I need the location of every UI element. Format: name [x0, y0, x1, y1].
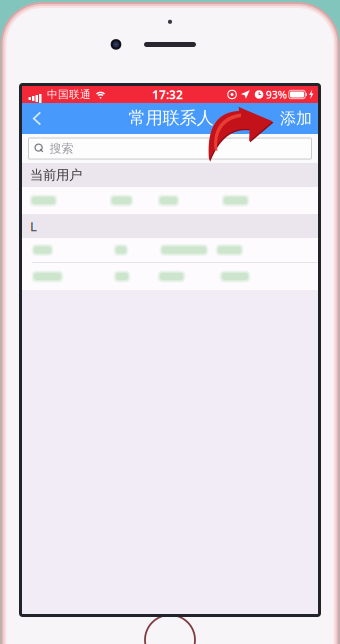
staticText: 17:32: [152, 86, 183, 102]
button[interactable]: [22, 238, 318, 262]
staticText: L: [30, 217, 37, 235]
staticText: 93%: [266, 87, 287, 102]
staticText: 中国联通: [47, 88, 91, 101]
button[interactable]: [22, 263, 318, 290]
staticText: 当前用户: [30, 167, 82, 183]
staticText: 常用联系人: [128, 107, 213, 129]
staticText: 添加: [280, 109, 312, 128]
button[interactable]: [22, 187, 318, 214]
staticText: 搜索: [49, 141, 73, 156]
button[interactable]: 添加: [274, 103, 318, 134]
button[interactable]: Back: [22, 103, 52, 134]
button[interactable]: 搜索: [22, 134, 318, 163]
